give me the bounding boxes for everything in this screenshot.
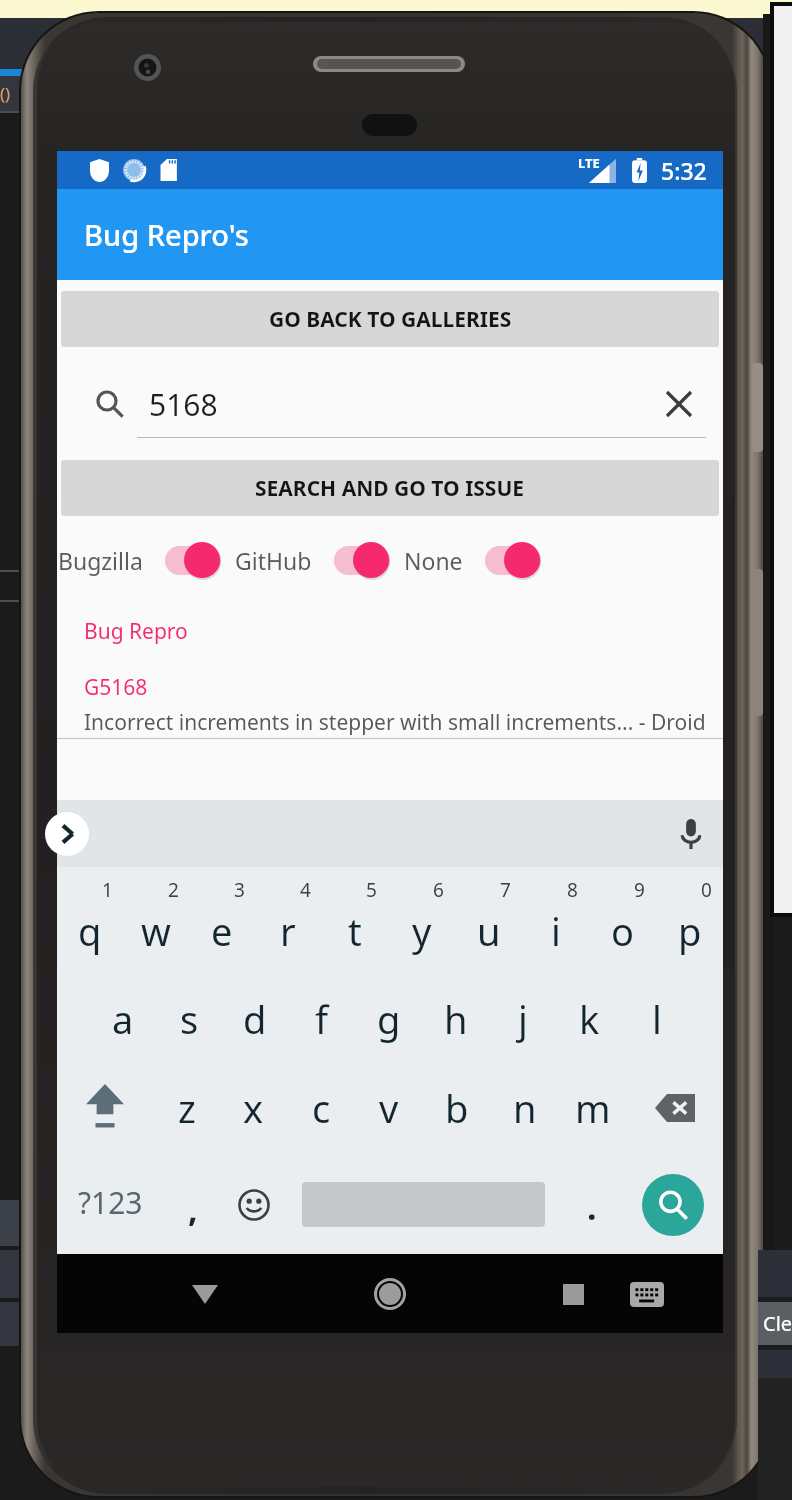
button[interactable]: h [422, 978, 489, 1060]
staticText: i [551, 905, 561, 957]
button[interactable]: , [163, 1155, 223, 1254]
button[interactable]: g [355, 978, 422, 1060]
button[interactable]: Show more suggestions [45, 812, 89, 856]
button[interactable]: z [153, 1060, 220, 1155]
staticText: q [78, 905, 102, 957]
staticText: 8 [567, 877, 578, 903]
button[interactable]: Home [362, 1266, 418, 1322]
staticText: 9 [634, 877, 645, 903]
staticText: c [312, 1082, 331, 1134]
button[interactable]: Switch keyboard [619, 1266, 675, 1322]
staticText: s [180, 993, 199, 1045]
other: Search [93, 387, 127, 421]
staticText: LTE [578, 154, 600, 172]
staticText: t [348, 905, 362, 957]
staticText: 2 [168, 877, 179, 903]
button[interactable]: f [288, 978, 355, 1060]
staticText: , [188, 1186, 198, 1232]
button[interactable]: . [561, 1155, 623, 1254]
button[interactable]: 3 [189, 867, 255, 978]
button[interactable]: v [355, 1060, 423, 1155]
staticText: Cle [763, 1310, 792, 1337]
staticText: w [141, 905, 171, 957]
button[interactable]: n [491, 1060, 559, 1155]
button[interactable]: Shift [57, 1060, 153, 1155]
button[interactable]: ?123 [57, 1155, 163, 1254]
staticText: GitHub [235, 545, 312, 576]
button[interactable]: x [220, 1060, 287, 1155]
staticText: d [243, 993, 267, 1045]
staticText: 5:32 [661, 155, 707, 186]
staticText: z [178, 1082, 196, 1134]
staticText: v [379, 1082, 399, 1134]
staticText: G5168 [84, 673, 148, 702]
staticText: Bug Repro's [84, 215, 249, 254]
button[interactable]: 4 [255, 867, 321, 978]
staticText: 5168 [149, 384, 218, 425]
staticText: p [678, 905, 702, 957]
button[interactable]: 2 [123, 867, 189, 978]
staticText: l [652, 993, 662, 1045]
button[interactable]: m [559, 1060, 627, 1155]
button[interactable]: Toggle [143, 534, 235, 586]
staticText: 1 [102, 877, 113, 903]
staticText: None [404, 545, 463, 576]
button[interactable]: 9 [589, 867, 656, 978]
button[interactable]: 1 [57, 867, 123, 978]
button[interactable]: Emoji [223, 1155, 285, 1254]
button[interactable]: c [287, 1060, 355, 1155]
button[interactable]: Toggle [312, 534, 404, 586]
staticText: f [315, 993, 329, 1045]
button[interactable]: SEARCH AND GO TO ISSUE [61, 460, 719, 516]
staticText: Bugzilla [58, 545, 143, 576]
button[interactable]: 7 [455, 867, 522, 978]
staticText: n [513, 1082, 537, 1134]
button[interactable]: Recent apps [545, 1266, 601, 1322]
button[interactable]: k [556, 978, 623, 1060]
button[interactable]: l [623, 978, 690, 1060]
button[interactable]: Clear text [653, 378, 705, 430]
staticText: 5 [366, 877, 377, 903]
staticText: SEARCH AND GO TO ISSUE [255, 474, 525, 503]
button[interactable]: d [222, 978, 288, 1060]
staticText: m [575, 1082, 611, 1134]
button[interactable]: Toggle [463, 534, 555, 586]
staticText: e [211, 905, 233, 957]
staticText: o [611, 905, 634, 957]
staticText: r [280, 905, 296, 957]
staticText: 4 [300, 877, 311, 903]
button[interactable]: b [423, 1060, 491, 1155]
staticText: . [587, 1184, 597, 1230]
button[interactable]: Voice input [671, 814, 711, 854]
staticText: u [477, 905, 501, 957]
button[interactable]: Bug Repro's [57, 189, 723, 280]
button[interactable]: 8 [522, 867, 589, 978]
button[interactable]: Back [177, 1266, 233, 1322]
staticText: b [445, 1082, 469, 1134]
staticText: 6 [433, 877, 444, 903]
staticText: k [579, 993, 600, 1045]
button[interactable]: GO BACK TO GALLERIES [61, 291, 719, 347]
button[interactable]: Search [642, 1174, 704, 1236]
staticText: j [518, 993, 528, 1045]
staticText: () [0, 82, 11, 105]
button[interactable]: a [90, 978, 156, 1060]
staticText: 7 [500, 877, 511, 903]
staticText: g [377, 993, 401, 1045]
staticText: Bug Repro [84, 617, 188, 646]
button[interactable]: 0 [656, 867, 723, 978]
staticText: 0 [701, 877, 712, 903]
staticText: a [112, 993, 134, 1045]
staticText: GO BACK TO GALLERIES [269, 305, 512, 334]
button[interactable]: 6 [388, 867, 455, 978]
button[interactable]: j [489, 978, 556, 1060]
button[interactable]: 5 [321, 867, 388, 978]
staticText: Incorrect increments in stepper with sma… [84, 708, 706, 737]
staticText: h [444, 993, 468, 1045]
staticText: 3 [234, 877, 245, 903]
staticText: y [412, 905, 432, 957]
button[interactable]: Backspace [627, 1060, 723, 1155]
staticText: ?123 [78, 1182, 143, 1223]
button[interactable]: s [156, 978, 222, 1060]
